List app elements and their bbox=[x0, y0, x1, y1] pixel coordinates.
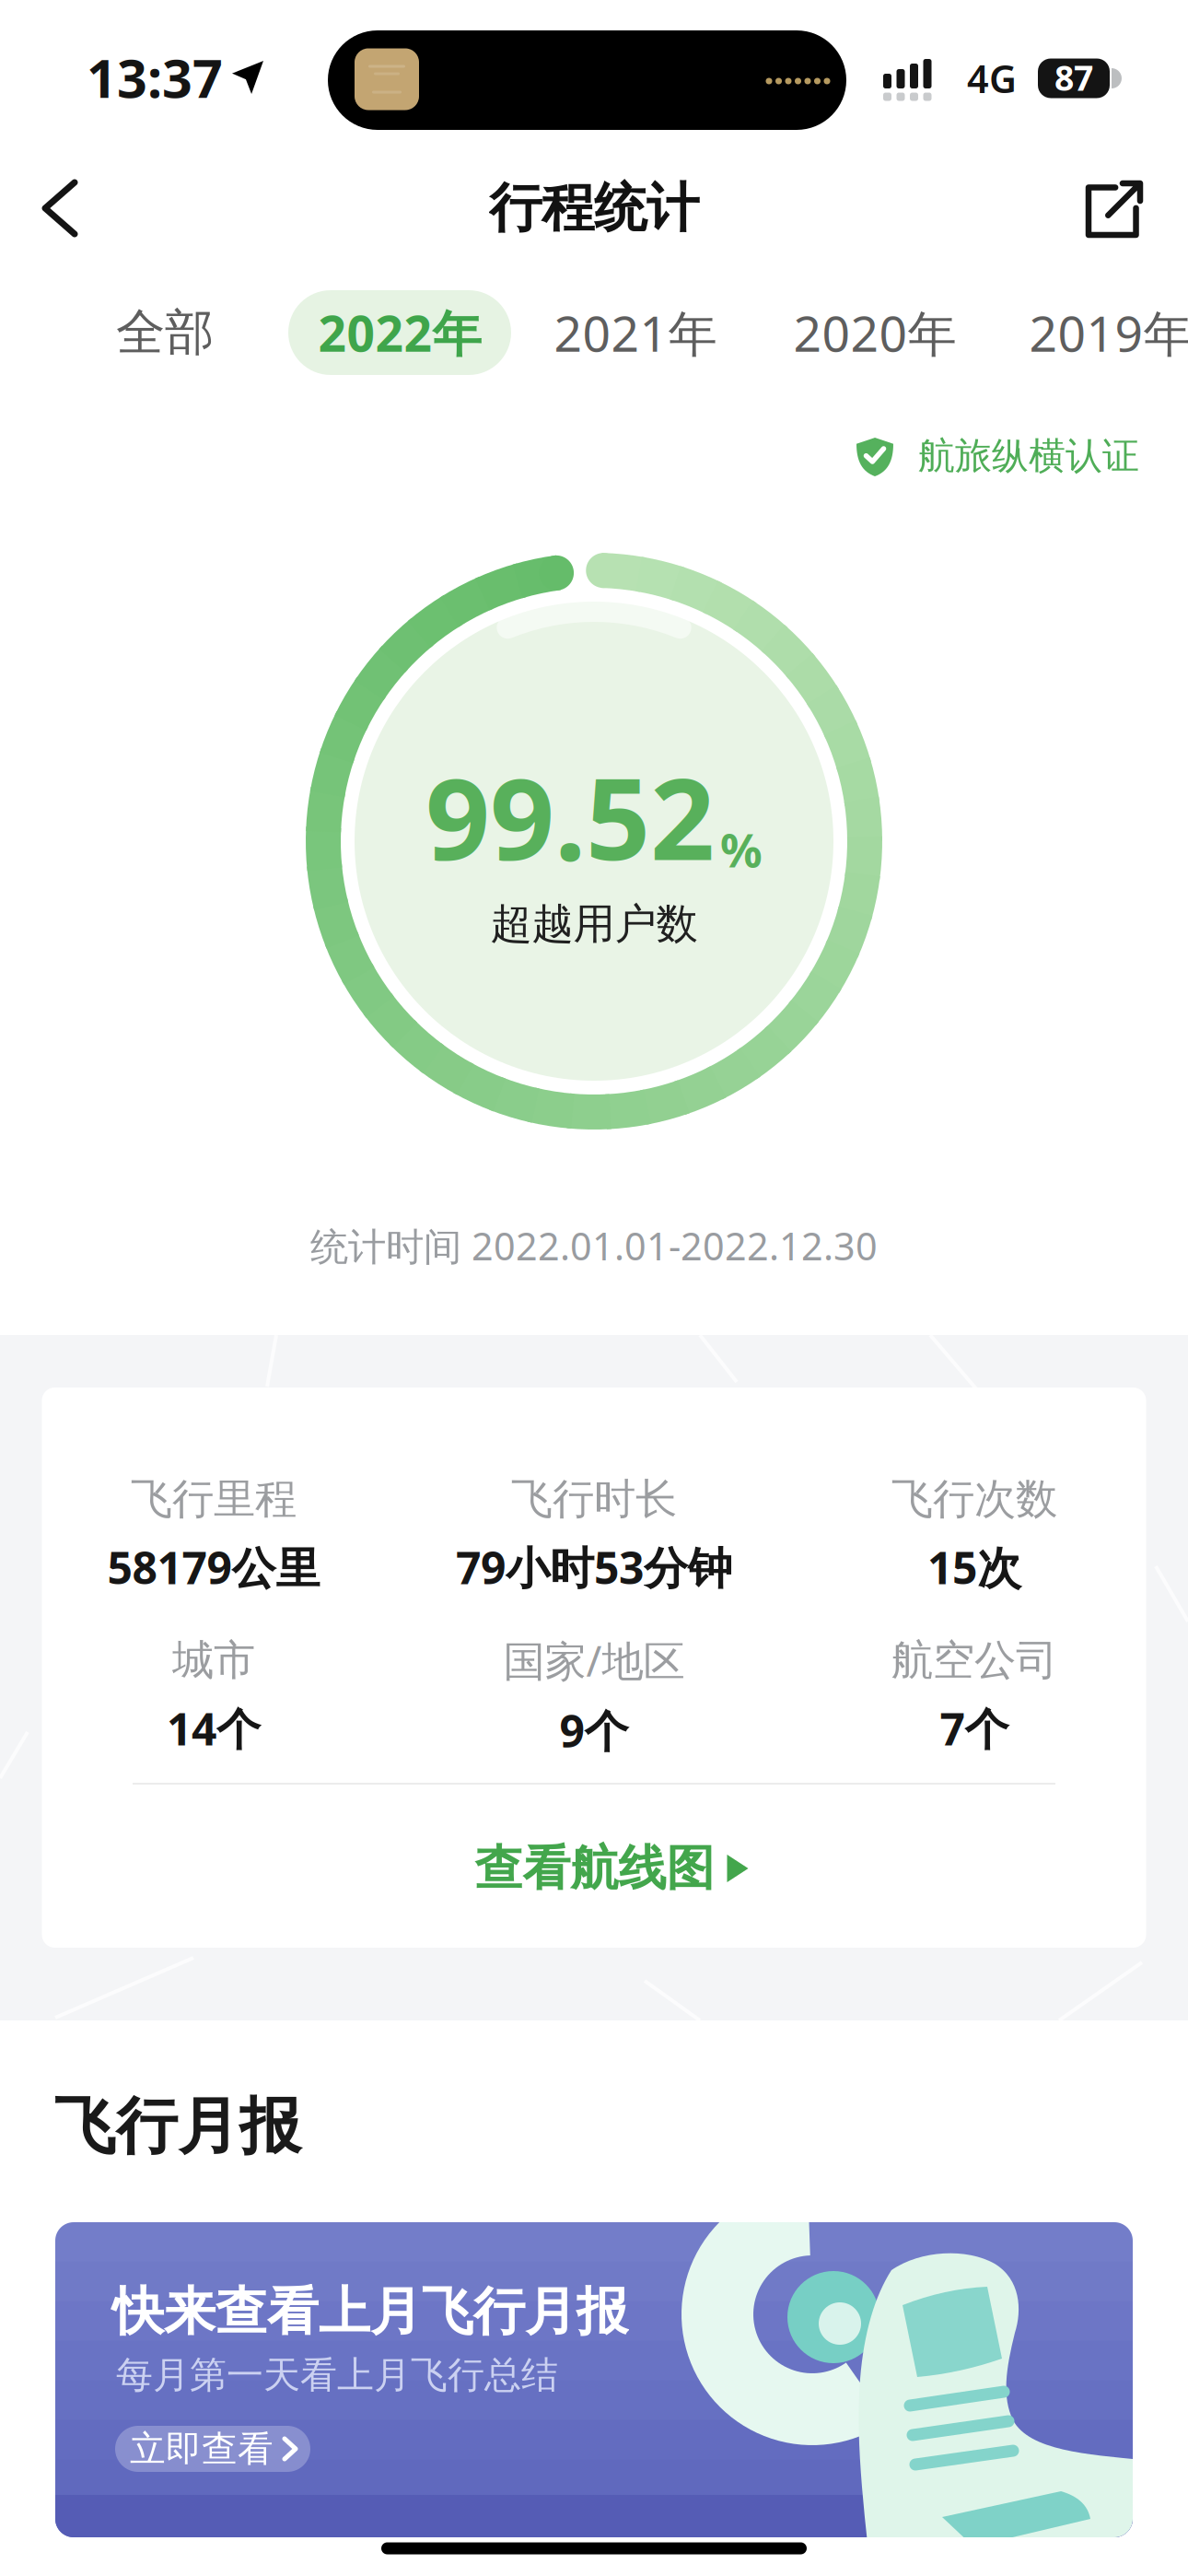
staticText: 飞行里程 bbox=[131, 1473, 297, 1525]
button[interactable]: Share bbox=[1076, 170, 1153, 248]
staticText: 2022年 bbox=[318, 300, 481, 365]
button[interactable]: 2022年 bbox=[288, 290, 511, 375]
button[interactable]: 快来查看上月飞行月报 bbox=[55, 2222, 1133, 2537]
staticText: 城市 bbox=[172, 1635, 255, 1686]
staticText: 87 bbox=[1054, 55, 1093, 100]
staticText: 99.52 bbox=[425, 741, 715, 891]
staticText: 13:37 bbox=[87, 42, 223, 112]
staticText: 航空公司 bbox=[891, 1635, 1057, 1686]
staticText: 快来查看上月飞行月报 bbox=[112, 2280, 628, 2343]
staticText: 2021年 bbox=[554, 300, 717, 365]
staticText: % bbox=[720, 818, 763, 880]
staticText: 15次 bbox=[927, 1538, 1021, 1596]
staticText: 2019年 bbox=[1029, 300, 1188, 365]
staticText: 4G bbox=[967, 53, 1017, 104]
staticText: 航旅纵横认证 bbox=[918, 433, 1139, 479]
staticText: 飞行次数 bbox=[891, 1473, 1057, 1525]
staticText: 飞行月报 bbox=[54, 2089, 301, 2164]
staticText: 2020年 bbox=[793, 300, 956, 365]
staticText: 9个 bbox=[559, 1701, 629, 1760]
staticText: 14个 bbox=[167, 1699, 261, 1758]
button[interactable]: 立即查看 bbox=[115, 2426, 310, 2472]
staticText: 国家/地区 bbox=[503, 1633, 685, 1688]
staticText: 立即查看 bbox=[130, 2427, 274, 2471]
staticText: 统计时间 2022.01.01-2022.12.30 bbox=[310, 1220, 878, 1271]
staticText: 行程统计 bbox=[489, 176, 699, 241]
staticText: 79小时53分钟 bbox=[456, 1538, 732, 1596]
staticText: 查看航线图 bbox=[475, 1839, 714, 1898]
button[interactable]: 2021年 bbox=[545, 291, 726, 374]
button[interactable]: 2020年 bbox=[784, 291, 966, 374]
button[interactable]: Back bbox=[27, 164, 93, 252]
button[interactable]: 全部 bbox=[107, 293, 223, 372]
staticText: 全部 bbox=[116, 302, 214, 363]
button[interactable]: 2019年 bbox=[1020, 291, 1188, 374]
staticText: 飞行时长 bbox=[511, 1473, 677, 1525]
button[interactable]: 查看航线图 bbox=[464, 1828, 759, 1909]
staticText: 7个 bbox=[940, 1699, 1009, 1758]
staticText: 超越用户数 bbox=[490, 898, 698, 950]
staticText: 每月第一天看上月飞行总结 bbox=[116, 2352, 558, 2398]
staticText: 58179公里 bbox=[107, 1538, 320, 1596]
